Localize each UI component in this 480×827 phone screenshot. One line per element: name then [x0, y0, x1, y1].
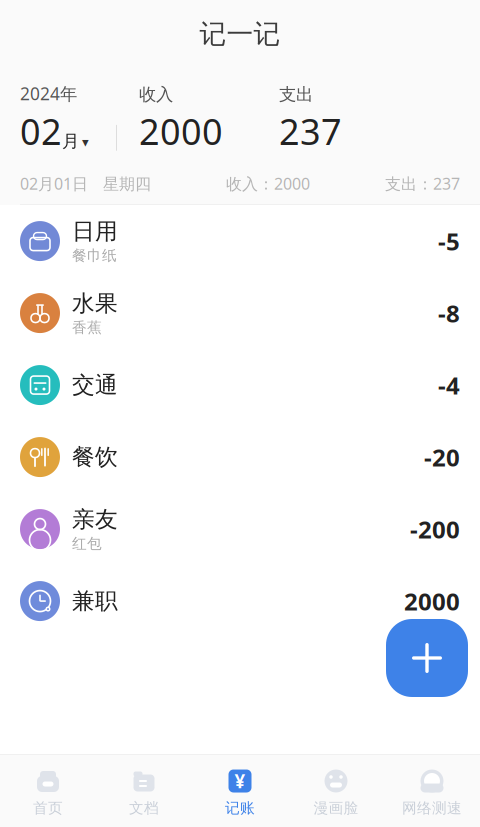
staticText: -4: [438, 369, 460, 401]
staticText: 亲友: [72, 506, 118, 533]
staticText: 支出: [279, 84, 313, 105]
button[interactable]: 日用: [0, 205, 480, 277]
staticText: -8: [438, 297, 460, 329]
button[interactable]: 首页: [0, 762, 96, 823]
staticText: -200: [410, 513, 460, 545]
staticText: 记一记: [199, 18, 280, 50]
staticText: 水果: [72, 290, 118, 317]
button[interactable]: 餐饮: [0, 421, 480, 493]
button[interactable]: 漫画脸: [288, 762, 384, 823]
button[interactable]: 文档: [96, 762, 192, 823]
button[interactable]: 兼职: [0, 565, 480, 637]
staticText: 2000: [139, 107, 223, 155]
staticText: ▾: [82, 135, 89, 150]
staticText: 记账: [225, 799, 255, 817]
staticText: 收入：2000: [226, 173, 310, 194]
staticText: 餐饮: [72, 443, 118, 471]
staticText: 红包: [72, 534, 102, 552]
staticText: ¥: [234, 769, 245, 793]
staticText: 漫画脸: [313, 799, 358, 817]
staticText: 2000: [404, 585, 460, 617]
staticText: 餐巾纸: [72, 246, 117, 264]
button[interactable]: 亲友: [0, 493, 480, 565]
staticText: 交通: [72, 371, 118, 399]
button[interactable]: 网络测速: [384, 762, 480, 823]
staticText: 支出：237: [385, 173, 460, 194]
button[interactable]: 交通: [0, 349, 480, 421]
staticText: 237: [279, 107, 342, 155]
staticText: 收入: [139, 84, 173, 105]
button[interactable]: 2024年: [20, 82, 89, 155]
staticText: 香蕉: [72, 318, 102, 336]
staticText: 首页: [33, 799, 63, 817]
staticText: 02: [20, 107, 62, 155]
staticText: 02月01日 星期四: [20, 173, 151, 194]
staticText: 月: [62, 130, 79, 152]
staticText: 兼职: [72, 587, 118, 615]
button[interactable]: 记一笔: [386, 619, 468, 697]
staticText: -20: [424, 441, 460, 473]
staticText: 网络测速: [402, 799, 462, 817]
button[interactable]: ¥: [192, 762, 288, 823]
staticText: 2024年: [20, 82, 77, 105]
staticText: 日用: [72, 218, 118, 245]
staticText: -5: [438, 225, 460, 257]
staticText: 文档: [129, 799, 159, 817]
button[interactable]: 水果: [0, 277, 480, 349]
